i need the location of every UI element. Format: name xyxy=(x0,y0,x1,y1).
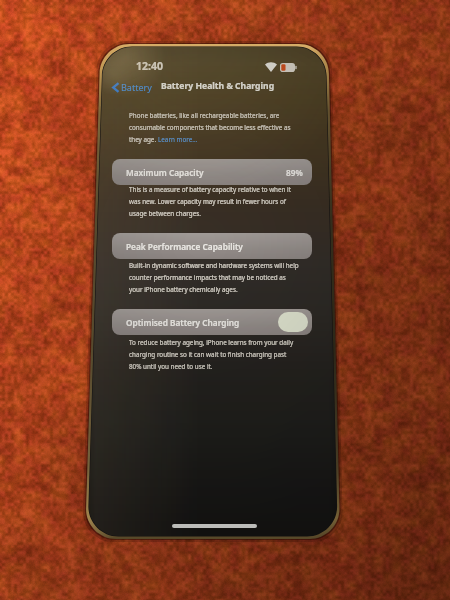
staticText: charging routine so it can wait to finis… xyxy=(129,350,287,359)
staticText: consumable components that become less e… xyxy=(129,123,291,132)
staticText: 89% xyxy=(286,167,303,178)
staticText: your iPhone battery chemically ages. xyxy=(129,285,238,294)
staticText: usage between charges. xyxy=(129,209,201,218)
staticText: Battery xyxy=(121,81,152,93)
staticText: Optimised Battery Charging xyxy=(126,317,240,328)
staticText: Peak Performance Capability xyxy=(126,241,243,252)
button[interactable]: Optimised Battery Charging toggle xyxy=(278,312,308,332)
staticText: To reduce battery ageing, iPhone learns … xyxy=(129,338,294,347)
staticText: Maximum Capacity xyxy=(126,167,204,178)
button[interactable]: Maximum Capacity xyxy=(112,159,312,185)
staticText: Battery Health & Charging xyxy=(161,80,275,92)
button[interactable]: Optimised Battery Charging xyxy=(112,309,312,335)
button[interactable]: Battery xyxy=(110,79,154,95)
staticText: counter performance impacts that may be … xyxy=(129,273,286,282)
staticText: Phone batteries, like all rechargeable b… xyxy=(129,111,280,120)
staticText: 80% until you need to use it. xyxy=(129,362,213,371)
button[interactable]: Peak Performance Capability xyxy=(112,233,312,259)
staticText: 12:40 xyxy=(136,59,163,73)
staticText: was new. Lower capacity may result in fe… xyxy=(129,197,286,206)
staticText: This is a measure of battery capacity re… xyxy=(129,185,291,194)
button[interactable]: Learn more... xyxy=(158,135,198,144)
staticText: they age. xyxy=(129,135,158,144)
staticText: Built-in dynamic software and hardware s… xyxy=(129,261,299,270)
